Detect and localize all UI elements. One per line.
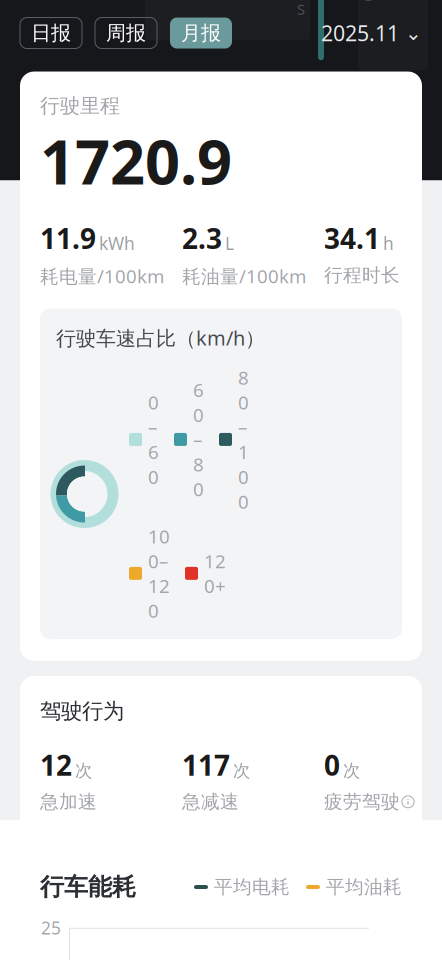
staticText: L (225, 232, 234, 255)
staticText: 耗油量/100km (182, 264, 306, 288)
staticText: 0 (324, 746, 340, 783)
button[interactable]: 月报 (170, 17, 232, 48)
staticText: 25 (41, 916, 61, 939)
staticText: 日报 (31, 21, 71, 45)
staticText: 疲劳驾驶 (324, 790, 400, 813)
staticText: 34.1 (324, 219, 380, 257)
staticText: 2025.11 (321, 19, 399, 47)
staticText: 急减速 (182, 790, 239, 813)
staticText: 次 (233, 760, 250, 781)
staticText: 周报 (106, 21, 146, 45)
staticText: 次 (343, 760, 360, 781)
staticText: h (383, 232, 394, 255)
staticText: ⌄ (405, 22, 422, 44)
staticText: 1720.9 (40, 120, 232, 201)
staticText: 月报 (181, 21, 221, 45)
staticText: 0–60 (148, 390, 159, 489)
staticText: E (364, 0, 372, 5)
staticText: 次 (75, 760, 92, 781)
staticText: S (297, 0, 305, 19)
staticText: 12 (40, 746, 72, 783)
staticText: 120+ (204, 549, 226, 598)
staticText: 11.9 (40, 219, 96, 257)
staticText: 2.3 (182, 219, 222, 257)
staticText: 100–120 (148, 524, 170, 623)
button[interactable]: 日报 (20, 17, 82, 48)
staticText: 平均电耗 (214, 876, 290, 898)
staticText: 急加速 (40, 790, 97, 813)
button[interactable]: 周报 (95, 17, 157, 48)
staticText: 行驶车速占比（km/h） (56, 324, 265, 351)
staticText: 平均油耗 (326, 876, 402, 898)
staticText: 行车能耗 (40, 872, 136, 902)
staticText: 60–80 (193, 377, 204, 501)
staticText: 耗电量/100km (40, 264, 164, 288)
staticText: kWh (99, 232, 135, 255)
staticText: 117 (182, 746, 230, 783)
staticText: 行程时长 (324, 264, 400, 287)
staticText: 80–100 (238, 365, 249, 514)
staticText: 驾驶行为 (40, 698, 124, 724)
staticText: 行驶里程 (40, 93, 120, 118)
button[interactable]: 2025.11 (321, 17, 422, 48)
